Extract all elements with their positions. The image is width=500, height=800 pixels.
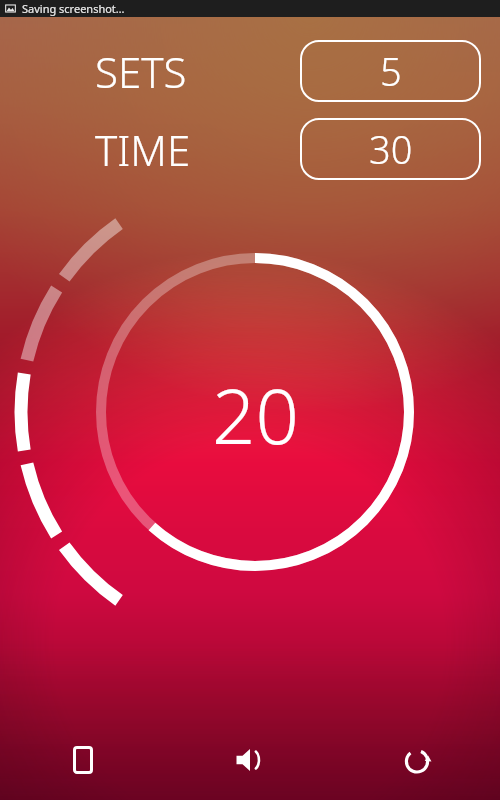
button[interactable]: Reset (333, 720, 500, 800)
button[interactable]: Timer 20 seconds remaining (96, 253, 414, 571)
button[interactable]: SETS (95, 40, 210, 102)
staticText: 5 (380, 45, 402, 97)
staticText: TIME (95, 121, 191, 178)
button[interactable]: Keep screen on (0, 720, 166, 800)
button[interactable]: 5 (300, 40, 481, 102)
button[interactable]: Sets progress (0, 0, 500, 800)
staticText: 20 (212, 363, 299, 467)
button[interactable]: 30 (300, 118, 481, 180)
staticText: SETS (95, 43, 187, 100)
staticText: 30 (369, 123, 413, 175)
button[interactable]: TIME (95, 118, 210, 180)
button[interactable]: Sound (166, 720, 333, 800)
staticText: Saving screenshot… (22, 1, 125, 16)
